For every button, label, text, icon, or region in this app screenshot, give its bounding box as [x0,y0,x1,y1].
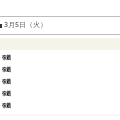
staticText: 宿題 [2,79,120,85]
staticText: 宿題 [2,67,120,73]
staticText: 3月5日（火） [4,20,48,30]
button[interactable]: 宿題 [0,100,120,112]
staticText: 宿題 [2,55,120,61]
button[interactable]: 宿題 [0,88,120,100]
button[interactable]: 宿題 [0,52,120,64]
button[interactable]: 宿題 [0,64,120,76]
button[interactable]: 3月5日（火） [0,17,120,34]
staticText: 宿題 [2,91,120,97]
staticText: 宿題 [2,103,120,109]
button[interactable]: 宿題 [0,76,120,88]
